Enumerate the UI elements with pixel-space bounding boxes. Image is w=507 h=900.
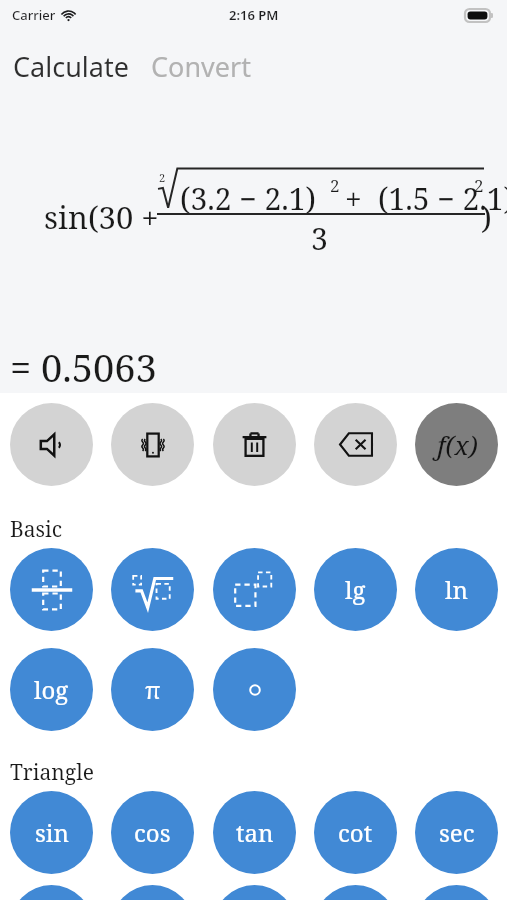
staticText: (3.2 − 2.1) [180, 178, 316, 219]
staticText: sec [439, 816, 475, 849]
button[interactable]: acos [213, 885, 296, 900]
staticText: π [145, 673, 161, 706]
staticText: sin(30 + [44, 196, 159, 238]
staticText: log [34, 673, 69, 706]
button[interactable]: tan [213, 791, 296, 874]
staticText: sin [35, 816, 69, 849]
button[interactable]: Functions [415, 403, 498, 486]
staticText: 3 [311, 218, 328, 259]
staticText: 2 [330, 174, 340, 197]
button[interactable]: Clear [213, 403, 296, 486]
staticText: 2 [474, 174, 484, 197]
button[interactable]: atan [314, 885, 397, 900]
button[interactable]: Vibrate [111, 403, 194, 486]
button[interactable]: csc [10, 885, 93, 900]
staticText: Basic [10, 515, 63, 544]
staticText: cos [134, 816, 171, 849]
button[interactable]: asin [111, 885, 194, 900]
staticText: (1.5 − 2.1) [378, 178, 507, 219]
button[interactable]: lg [314, 548, 397, 631]
staticText: ƒ(x) [435, 427, 478, 462]
staticText: = 0.5063 [10, 341, 157, 393]
button[interactable]: Backspace [314, 403, 397, 486]
staticText: Carrier [12, 6, 56, 24]
button[interactable]: Convert [147, 44, 255, 89]
staticText: ln [445, 573, 468, 606]
staticText: 2:16 PM [229, 6, 279, 24]
staticText: tan [236, 816, 274, 849]
staticText: 2 [159, 170, 166, 185]
staticText: Convert [151, 48, 251, 85]
button[interactable]: Sound [10, 403, 93, 486]
button[interactable]: cot [314, 791, 397, 874]
button[interactable]: sin [10, 791, 93, 874]
staticText: + [345, 178, 362, 219]
button[interactable]: sec [415, 791, 498, 874]
button[interactable]: π [111, 648, 194, 731]
button[interactable]: Calculate [9, 44, 133, 89]
button[interactable]: log [10, 648, 93, 731]
button[interactable]: acot [415, 885, 498, 900]
button[interactable]: Degree [213, 648, 296, 731]
staticText: Calculate [13, 48, 129, 85]
staticText: ) [481, 196, 492, 238]
staticText: lg [345, 573, 366, 606]
button[interactable]: Root [111, 548, 194, 631]
button[interactable]: Power [213, 548, 296, 631]
button[interactable]: ln [415, 548, 498, 631]
button[interactable]: Fraction [10, 548, 93, 631]
staticText: cot [338, 816, 373, 849]
staticText: Triangle [10, 758, 94, 787]
button[interactable]: cos [111, 791, 194, 874]
